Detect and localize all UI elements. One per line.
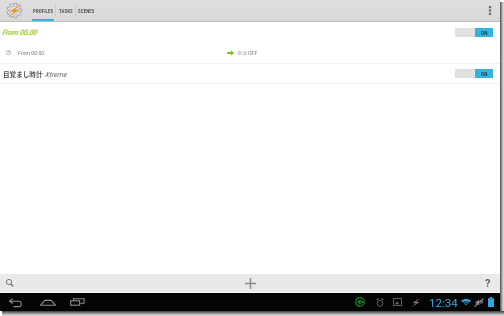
staticText: SCENES (78, 8, 95, 14)
staticText: From 00.00 (2, 28, 37, 37)
staticText: PROFILES (33, 8, 54, 14)
button[interactable]: Enabled toggle (455, 69, 493, 78)
button[interactable]: Help (481, 274, 495, 292)
button[interactable]: TASKS (56, 0, 75, 21)
button[interactable]: From 00:00 (0, 42, 500, 63)
button[interactable]: Add (238, 274, 262, 292)
staticText: 12:34 (429, 296, 458, 309)
button[interactable]: 目覚まし時計 (0, 64, 500, 83)
staticText: 画面 (237, 49, 248, 57)
staticText: From 00:00 (18, 50, 45, 56)
staticText: TASKS (59, 8, 73, 14)
button[interactable]: PROFILES (32, 0, 54, 21)
staticText: ON (481, 71, 488, 77)
button[interactable]: Search (0, 274, 20, 292)
staticText: ON (481, 30, 488, 36)
button[interactable]: From 00.00 (0, 22, 500, 42)
staticText: OFF (248, 50, 258, 56)
button[interactable]: Home (40, 293, 56, 311)
staticText: ? (485, 277, 491, 290)
staticText: 目覚まし時計 (3, 69, 43, 79)
staticText: Xtreme (43, 71, 67, 79)
button[interactable]: Back (8, 293, 24, 311)
button[interactable]: More options (483, 0, 497, 21)
button[interactable]: SCENES (76, 0, 97, 21)
button[interactable]: Enabled toggle (455, 28, 493, 37)
button[interactable]: Recent apps (70, 293, 86, 311)
